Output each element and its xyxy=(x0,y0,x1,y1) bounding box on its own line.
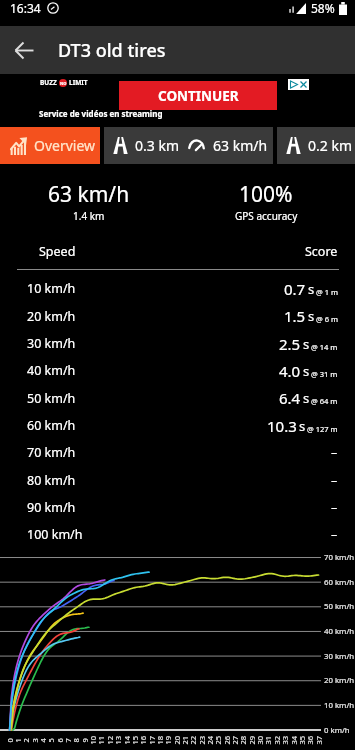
button[interactable]: 30 km/h xyxy=(27,330,338,357)
staticText: – xyxy=(331,499,338,516)
button[interactable]: 70 km/h xyxy=(27,439,338,466)
staticText: 70 km/h xyxy=(27,444,76,461)
staticText: 100 km/h xyxy=(27,526,83,543)
staticText: GPS accuracy xyxy=(235,209,298,223)
staticText: @ 14 m xyxy=(311,342,338,352)
button[interactable]: 0.2 km xyxy=(277,127,355,164)
staticText: 4.0 xyxy=(279,361,301,381)
staticText: Overview xyxy=(34,136,96,155)
button[interactable]: 0.3 km xyxy=(104,127,273,164)
button[interactable]: Back xyxy=(0,26,48,74)
staticText: – xyxy=(331,444,338,461)
staticText: 0.2 km xyxy=(308,136,352,155)
staticText: 63 km/h xyxy=(213,136,268,155)
staticText: @ 31 m xyxy=(311,369,338,379)
staticText: NO xyxy=(60,81,67,86)
staticText: DT3 old tires xyxy=(58,38,166,63)
staticText: 58% xyxy=(311,0,335,16)
button[interactable]: CONTINUER xyxy=(119,81,277,110)
staticText: s xyxy=(303,362,310,380)
staticText: @ 6 m xyxy=(316,314,338,324)
button[interactable]: Overview xyxy=(0,127,100,164)
staticText: 63 km/h xyxy=(48,180,130,209)
staticText: BUZZ xyxy=(40,78,57,87)
staticText: 30 km/h xyxy=(27,335,76,352)
button[interactable]: 100 km/h xyxy=(27,521,338,548)
staticText: – xyxy=(331,472,338,489)
staticText: 2.5 xyxy=(279,334,301,354)
staticText: 20 km/h xyxy=(27,308,76,325)
button[interactable]: 20 km/h xyxy=(27,302,338,330)
staticText: Score xyxy=(305,243,338,260)
staticText: LIMIT xyxy=(69,78,88,87)
staticText: 100% xyxy=(239,180,293,209)
staticText: Service de vidéos en streaming xyxy=(39,108,163,119)
staticText: 16:34 xyxy=(10,0,41,16)
staticText: s xyxy=(299,417,306,435)
staticText: @ 64 m xyxy=(311,396,338,406)
staticText: s xyxy=(308,307,315,325)
staticText: 50 km/h xyxy=(27,390,76,407)
button[interactable]: Ad choices xyxy=(289,80,308,89)
staticText: 80 km/h xyxy=(27,472,76,489)
staticText: 40 km/h xyxy=(27,362,76,379)
button[interactable]: 90 km/h xyxy=(27,494,338,521)
staticText: 1.5 xyxy=(284,306,306,326)
staticText: @ 1 m xyxy=(316,287,338,297)
staticText: 0.7 xyxy=(284,279,306,299)
staticText: s xyxy=(303,389,310,407)
staticText: 6.4 xyxy=(279,388,301,408)
staticText: 10 km/h xyxy=(27,280,76,297)
staticText: 1.4 km xyxy=(73,209,105,223)
staticText: s xyxy=(303,335,310,353)
staticText: 0.3 km xyxy=(135,136,179,155)
button[interactable]: 80 km/h xyxy=(27,466,338,494)
staticText: @ 127 m xyxy=(307,424,338,434)
button[interactable]: 10 km/h xyxy=(27,275,338,302)
button[interactable]: 60 km/h xyxy=(27,412,338,439)
staticText: – xyxy=(331,526,338,543)
staticText: CONTINUER xyxy=(158,87,239,105)
staticText: 10.3 xyxy=(267,416,297,436)
staticText: Speed xyxy=(39,243,76,260)
staticText: 60 km/h xyxy=(27,417,76,434)
button[interactable]: 50 km/h xyxy=(27,384,338,412)
button[interactable]: 40 km/h xyxy=(27,357,338,384)
staticText: 90 km/h xyxy=(27,499,76,516)
staticText: s xyxy=(308,280,315,298)
